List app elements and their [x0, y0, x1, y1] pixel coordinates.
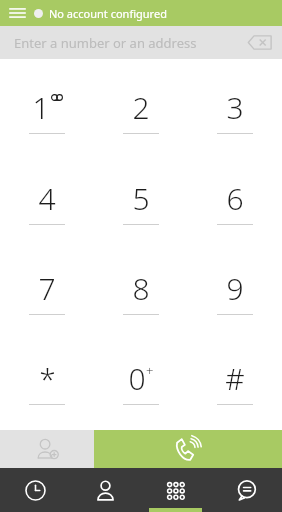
button[interactable]: 1: [0, 65, 94, 156]
button[interactable]: 0: [94, 336, 188, 426]
button[interactable]: #: [188, 336, 282, 426]
staticText: Enter a number or an address: [14, 34, 232, 52]
button[interactable]: 3: [188, 65, 282, 156]
button[interactable]: 9: [188, 246, 282, 336]
button[interactable]: Add contact: [0, 430, 94, 468]
staticText: +: [146, 362, 154, 380]
staticText: No account configured: [49, 6, 167, 21]
staticText: 7: [38, 268, 56, 309]
button[interactable]: Dialpad: [140, 468, 211, 512]
button[interactable]: 7: [0, 246, 94, 336]
button[interactable]: Call: [94, 430, 282, 468]
staticText: 2: [132, 87, 150, 128]
staticText: 0: [128, 358, 146, 399]
button[interactable]: Open navigation menu: [0, 0, 34, 26]
button[interactable]: 8: [94, 246, 188, 336]
staticText: 9: [226, 268, 244, 309]
staticText: 6: [226, 178, 244, 219]
button[interactable]: 2: [94, 65, 188, 156]
button[interactable]: *: [0, 336, 94, 426]
button[interactable]: Call history: [0, 468, 70, 512]
button[interactable]: 6: [188, 156, 282, 246]
button[interactable]: 5: [94, 156, 188, 246]
button[interactable]: Backspace: [232, 26, 282, 59]
button[interactable]: 4: [0, 156, 94, 246]
button[interactable]: Messages: [211, 468, 282, 512]
staticText: *: [39, 358, 56, 399]
staticText: #: [225, 358, 245, 399]
button[interactable]: Contacts: [70, 468, 140, 512]
staticText: 3: [226, 87, 244, 128]
staticText: 1: [32, 87, 50, 128]
staticText: 8: [132, 268, 150, 309]
staticText: 5: [132, 178, 150, 219]
staticText: 4: [38, 178, 56, 219]
